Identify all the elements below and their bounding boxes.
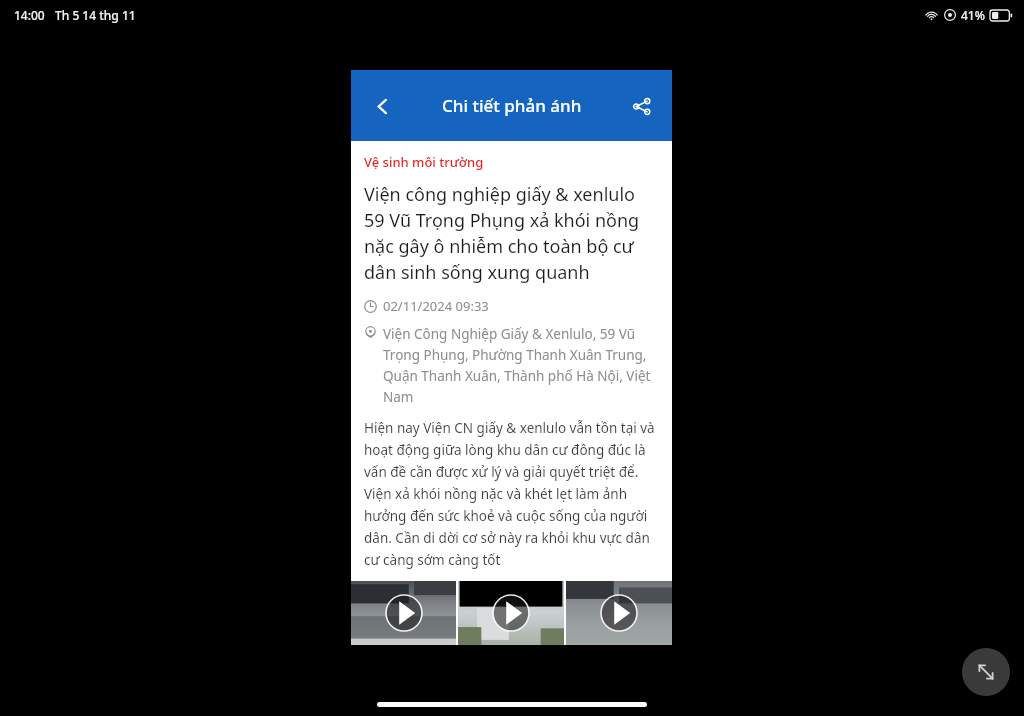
- staticText: 02/11/2024 09:33: [383, 297, 489, 315]
- button[interactable]: Play video: [458, 581, 564, 645]
- staticText: 14:00: [14, 7, 45, 23]
- staticText: 41%: [961, 7, 985, 23]
- button[interactable]: Play video: [351, 581, 456, 645]
- button[interactable]: Share: [621, 86, 661, 126]
- staticText: Viện Công Nghiệp Giấy & Xenlulo, 59 Vũ T…: [383, 325, 659, 406]
- staticText: Viện công nghiệp giấy & xenlulo 59 Vũ Tr…: [364, 182, 659, 285]
- button[interactable]: Play video: [566, 581, 672, 645]
- button[interactable]: Back: [362, 86, 402, 126]
- staticText: Vệ sinh môi trường: [364, 153, 484, 171]
- staticText: Chi tiết phản ánh: [442, 94, 582, 117]
- staticText: Th 5 14 thg 11: [55, 7, 136, 23]
- staticText: Hiện nay Viện CN giấy & xenlulo vẫn tồn …: [364, 419, 659, 569]
- button[interactable]: Resize: [962, 648, 1010, 696]
